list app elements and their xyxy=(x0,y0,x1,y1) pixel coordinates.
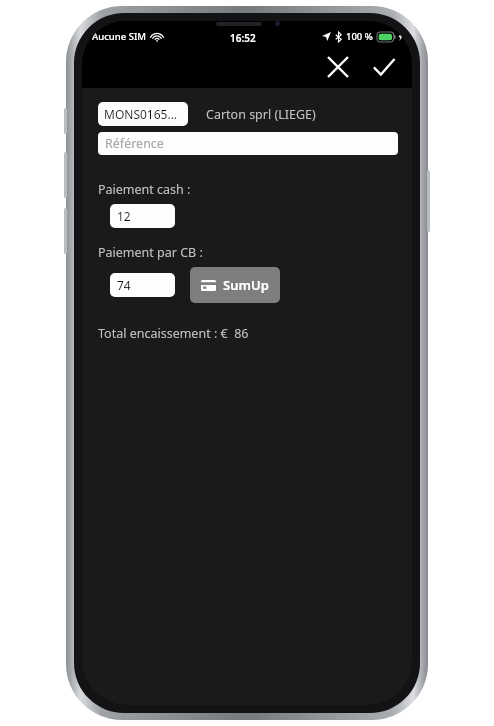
button[interactable]: Annuler xyxy=(318,47,358,87)
staticText: 16:52 xyxy=(230,31,256,45)
staticText: Aucune SIM xyxy=(92,30,146,43)
staticText: SumUp xyxy=(223,276,269,294)
button[interactable]: Référence xyxy=(98,132,398,155)
staticText: Carton sprl (LIEGE) xyxy=(206,106,316,123)
staticText: MONS0165... xyxy=(104,106,178,122)
staticText: Référence xyxy=(105,135,164,152)
staticText: Total encaissement : € 86 xyxy=(98,325,249,342)
button[interactable]: 12 xyxy=(110,204,175,228)
button[interactable]: MONS0165... xyxy=(98,102,188,126)
button[interactable]: SumUp xyxy=(190,267,280,303)
staticText: 12 xyxy=(117,208,131,224)
button[interactable]: Valider xyxy=(364,47,404,87)
button[interactable]: 74 xyxy=(110,273,175,297)
staticText: 100 % xyxy=(346,30,373,43)
staticText: Paiement cash : xyxy=(98,181,191,198)
staticText: Paiement par CB : xyxy=(98,244,203,261)
staticText: 74 xyxy=(117,277,131,293)
